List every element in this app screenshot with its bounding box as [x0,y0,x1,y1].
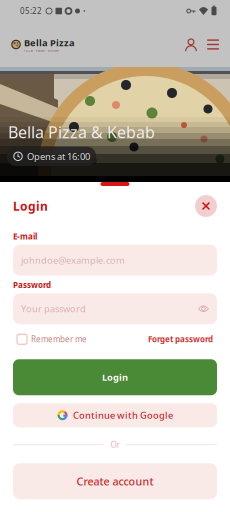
staticText: Your password [21,303,86,315]
button[interactable]: Close [195,195,217,217]
staticText: Login [102,371,128,383]
button[interactable]: Create account [13,463,217,499]
staticText: Bella Pizza [24,36,75,49]
button[interactable]: Account [179,32,203,56]
staticText: 05:22 [20,6,42,16]
staticText: Forget password [148,334,213,344]
staticText: johndoe@example.com [21,254,125,266]
staticText: Bella Pizza & Kebab [8,121,155,143]
button[interactable]: Continue with Google [13,403,217,427]
staticText: Remember me [31,334,87,344]
button[interactable]: Forget password [148,334,213,344]
staticText: Continue with Google [73,409,173,421]
button[interactable]: johndoe@example.com [13,245,217,276]
button[interactable]: Login [13,359,217,395]
staticText: PIZZA · KEBAB · BURGER [24,49,59,52]
staticText: Login [13,198,48,214]
staticText: Or [110,439,119,450]
staticText: Create account [76,474,153,488]
staticText: E-mail [13,231,37,242]
button[interactable]: Remember me [17,334,87,344]
button[interactable]: Your password [13,293,217,324]
button[interactable]: Menu [203,33,223,56]
staticText: Opens at 16:00 [27,150,90,162]
staticText: Password [13,280,51,290]
